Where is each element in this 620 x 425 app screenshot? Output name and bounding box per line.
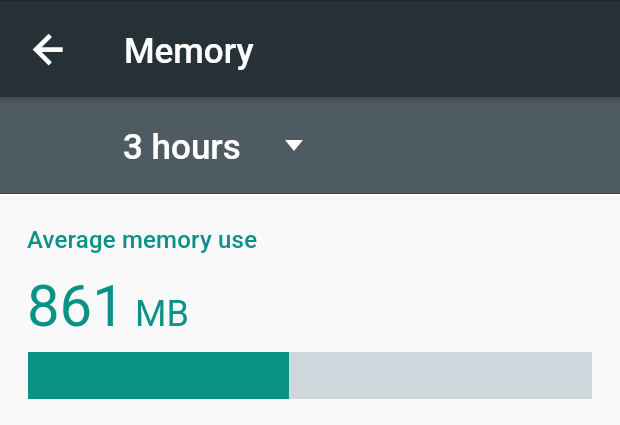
button[interactable]: Back xyxy=(24,25,72,73)
staticText: MB xyxy=(135,293,189,335)
staticText: Memory xyxy=(124,31,254,72)
button[interactable] xyxy=(28,352,592,399)
staticText: 861 xyxy=(27,272,125,340)
button[interactable]: 3 hours xyxy=(108,111,318,179)
staticText: Average memory use xyxy=(27,226,258,254)
staticText: 3 hours xyxy=(123,127,241,168)
